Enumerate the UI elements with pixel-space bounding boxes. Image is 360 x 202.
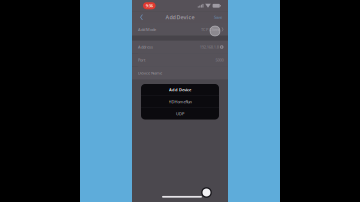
button[interactable]: Device Name [132,67,228,79]
button[interactable]: Back [135,11,148,23]
staticText: Add Device [169,87,191,92]
button[interactable]: Address [132,41,228,53]
staticText: UDP [176,111,184,116]
staticText: Add Mode [138,27,156,32]
button[interactable]: HDHomeRun [141,96,219,108]
button[interactable]: UDP [141,108,219,119]
staticText: Save [214,15,222,20]
button[interactable]: Add Mode [132,23,228,36]
button[interactable]: Save [211,11,225,23]
staticText: Device Name [138,70,162,76]
staticText: HDHomeRun [168,99,191,104]
button[interactable]: Port [132,54,228,66]
staticText: 9:36 [146,3,153,8]
staticText: Port [138,57,145,63]
staticText: Address [138,44,153,50]
staticText: 5000 [215,57,223,63]
staticText: Add Device [165,14,194,21]
staticText: 192.168.1.8 [200,44,219,50]
staticText: TCP Client [201,27,219,32]
